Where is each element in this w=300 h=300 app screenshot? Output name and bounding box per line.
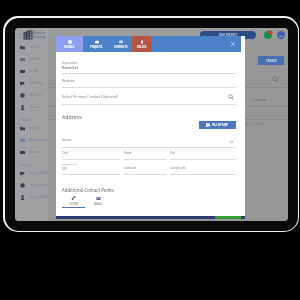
button[interactable]: ADD PROJECT [200,31,256,39]
staticText: Project Settings [29,195,48,199]
staticText: Select Primary Contact (Optional) [62,94,118,99]
staticText: MW [279,34,284,37]
button[interactable]: Meeting [15,89,48,101]
staticText: Contacts [29,150,43,154]
staticText: City [62,151,68,155]
staticText: Settings [20,163,32,167]
other: Search [272,76,279,83]
button[interactable]: Media [15,65,48,77]
staticText: Routes [29,105,40,109]
staticText: CREATE [266,59,277,63]
button[interactable]: Profile [277,31,285,39]
staticText: Website [62,78,75,83]
staticText: Country Code [62,162,78,165]
staticText: Contacts [253,97,267,101]
staticText: Projects [29,45,41,49]
staticText: Meetings [29,81,43,85]
button[interactable]: PHONE [62,196,85,208]
button[interactable]: Notifications [264,31,272,39]
staticText: Organizations [29,138,48,142]
staticText: Zip [170,151,175,155]
staticText: Additional Contact Points [62,187,115,193]
staticText: EMAIL [94,202,103,206]
staticText: Latitude [124,166,137,170]
button[interactable]: Contacts [15,146,48,158]
button[interactable]: CONTACTS [110,36,132,52]
staticText: RevitGeo Property, Inc [33,31,48,39]
staticText: Meeting [29,93,42,97]
button[interactable]: Close [225,36,241,52]
staticText: 50 ▾ 1-1 of 1 [244,122,265,126]
staticText: Users [29,126,38,130]
button[interactable]: Meetings [15,77,48,89]
staticText: People [20,118,30,122]
button[interactable]: Security Roles [15,167,48,179]
button[interactable]: Users [15,122,48,134]
staticText: State [124,151,132,155]
staticText: Project Roles [29,183,48,187]
staticText: DETAILS [64,45,75,49]
button[interactable]: Project Roles [15,179,48,191]
staticText: Longitude [170,166,186,170]
button[interactable]: PROJECTS [83,36,110,52]
staticText: PROJECTS [90,45,103,49]
button[interactable]: DELETE [132,36,151,52]
button[interactable]: FILL BY MAP [199,121,236,129]
staticText: Security Roles [29,171,48,175]
button[interactable]: Projects [15,41,48,53]
other: Search contact [228,94,234,100]
button[interactable]: Routes [15,101,48,113]
staticText: Organization [62,61,78,65]
staticText: US [62,166,67,171]
button[interactable]: Reports [15,53,48,65]
button[interactable]: Organizations [15,134,48,146]
staticText: FILL BY MAP [212,123,229,127]
button[interactable]: Project Settings [15,191,48,203]
staticText: DELETE [137,45,147,49]
staticText: Reports [29,57,41,61]
button[interactable]: EMAIL [87,196,110,208]
staticText: Address [62,113,82,120]
staticText: PHONE [69,202,79,206]
staticText: 1 [261,110,263,114]
staticText: Media [29,69,39,73]
staticText: Street [62,137,72,142]
staticText: ADD PROJECT [219,33,238,37]
button[interactable]: CREATE [258,56,284,65]
staticText: CONTACTS [114,45,128,49]
staticText: RevitSet [62,65,79,71]
button[interactable]: DETAILS [56,36,83,52]
